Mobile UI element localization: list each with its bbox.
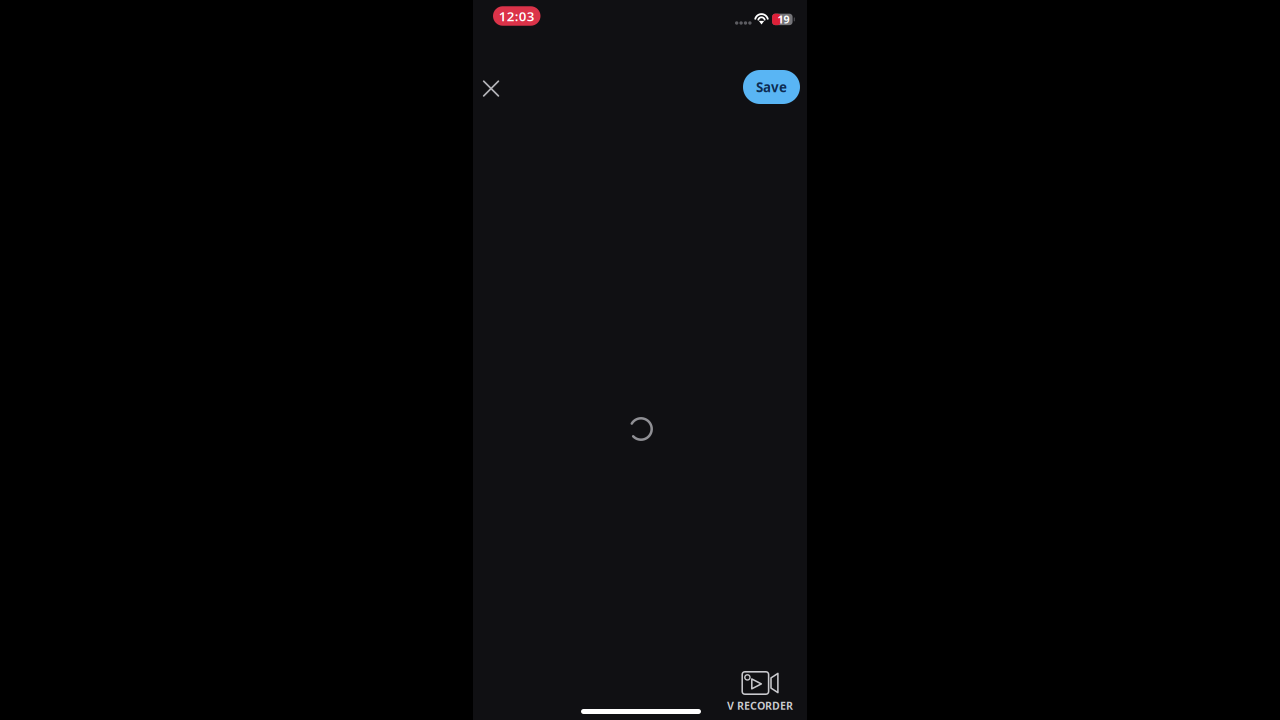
staticText: 12:03 [499,7,535,25]
staticText: V RECORDER [727,698,793,713]
staticText: 19 [777,12,789,26]
staticText: Save [756,78,787,96]
button[interactable]: Close [473,65,513,109]
button[interactable]: Save [743,70,800,104]
